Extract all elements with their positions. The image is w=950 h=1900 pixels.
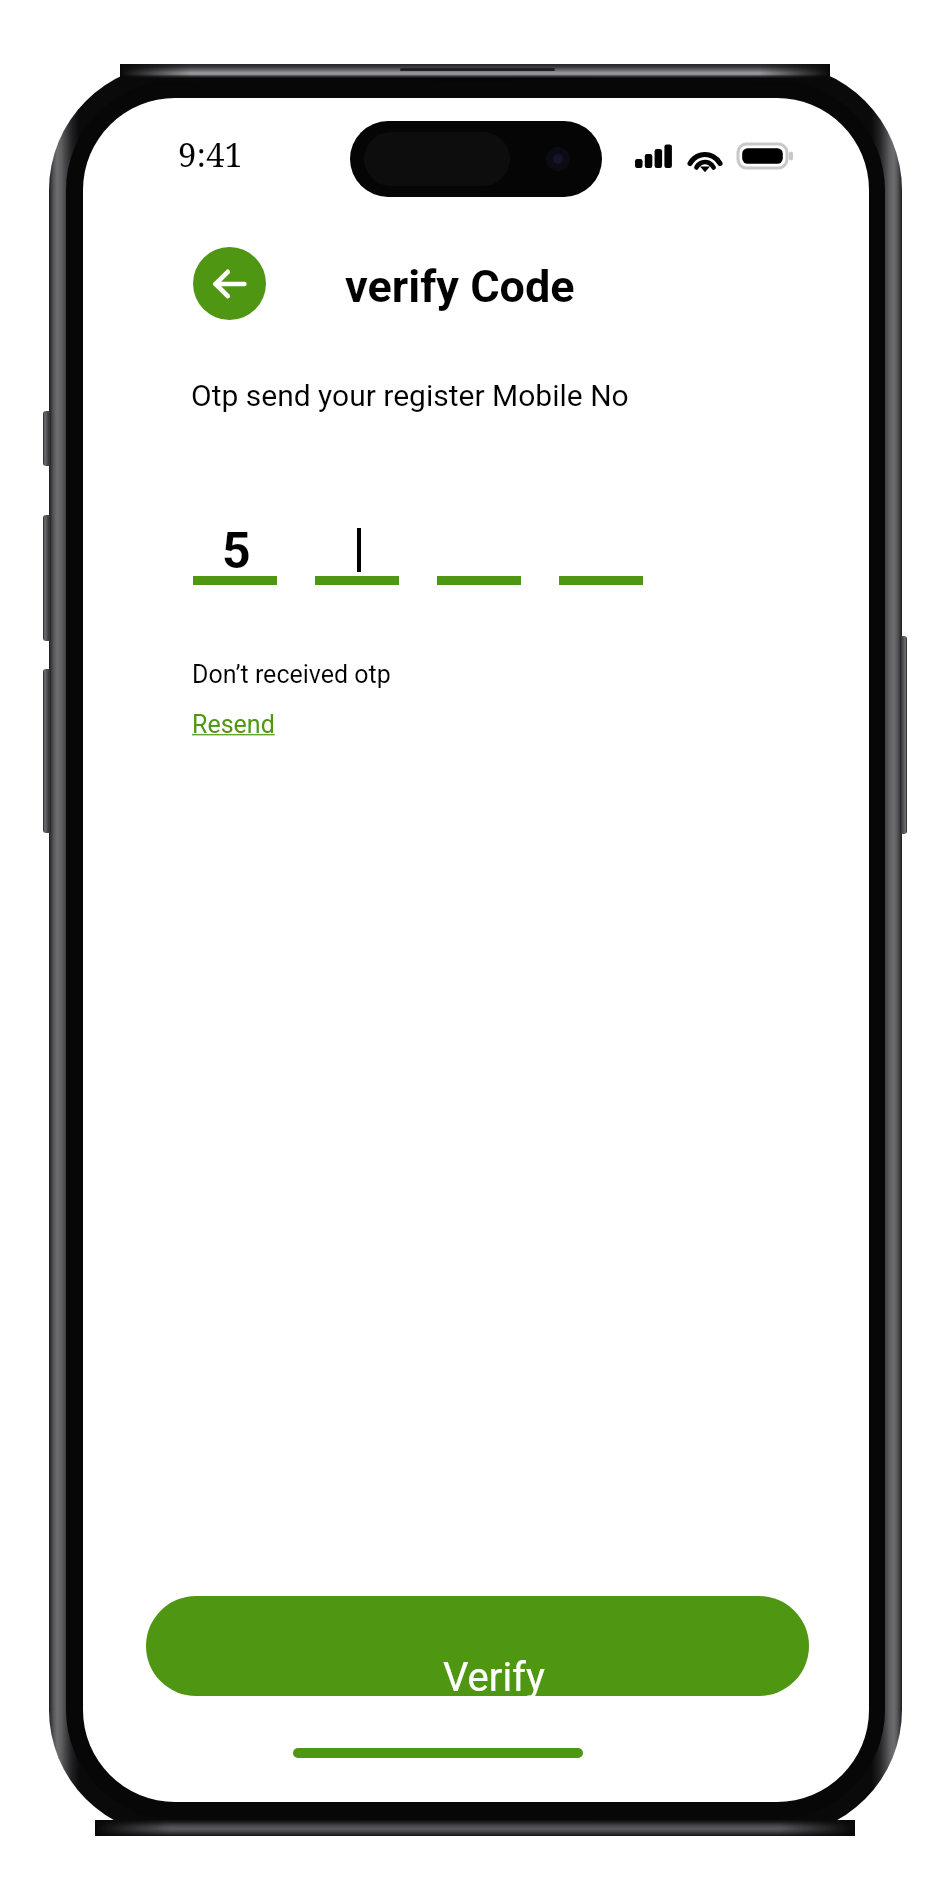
button[interactable]: OTP digit 3 [437,510,521,585]
button[interactable]: Back [193,247,266,320]
button[interactable]: OTP digit 1 [193,510,277,585]
staticText: 9:41 [178,132,243,177]
button[interactable]: OTP digit 4 [559,510,643,585]
staticText: verify Code [345,260,575,313]
staticText: Don’t received otp [192,660,391,689]
staticText: Resend [192,710,275,739]
staticText: Verify [443,1654,545,1696]
button[interactable]: Verify [146,1596,809,1696]
staticText: 5 [222,522,251,581]
staticText: Otp send your register Mobile No [191,378,629,413]
button[interactable]: OTP digit 2 [315,510,399,585]
button[interactable]: Resend [192,710,275,739]
